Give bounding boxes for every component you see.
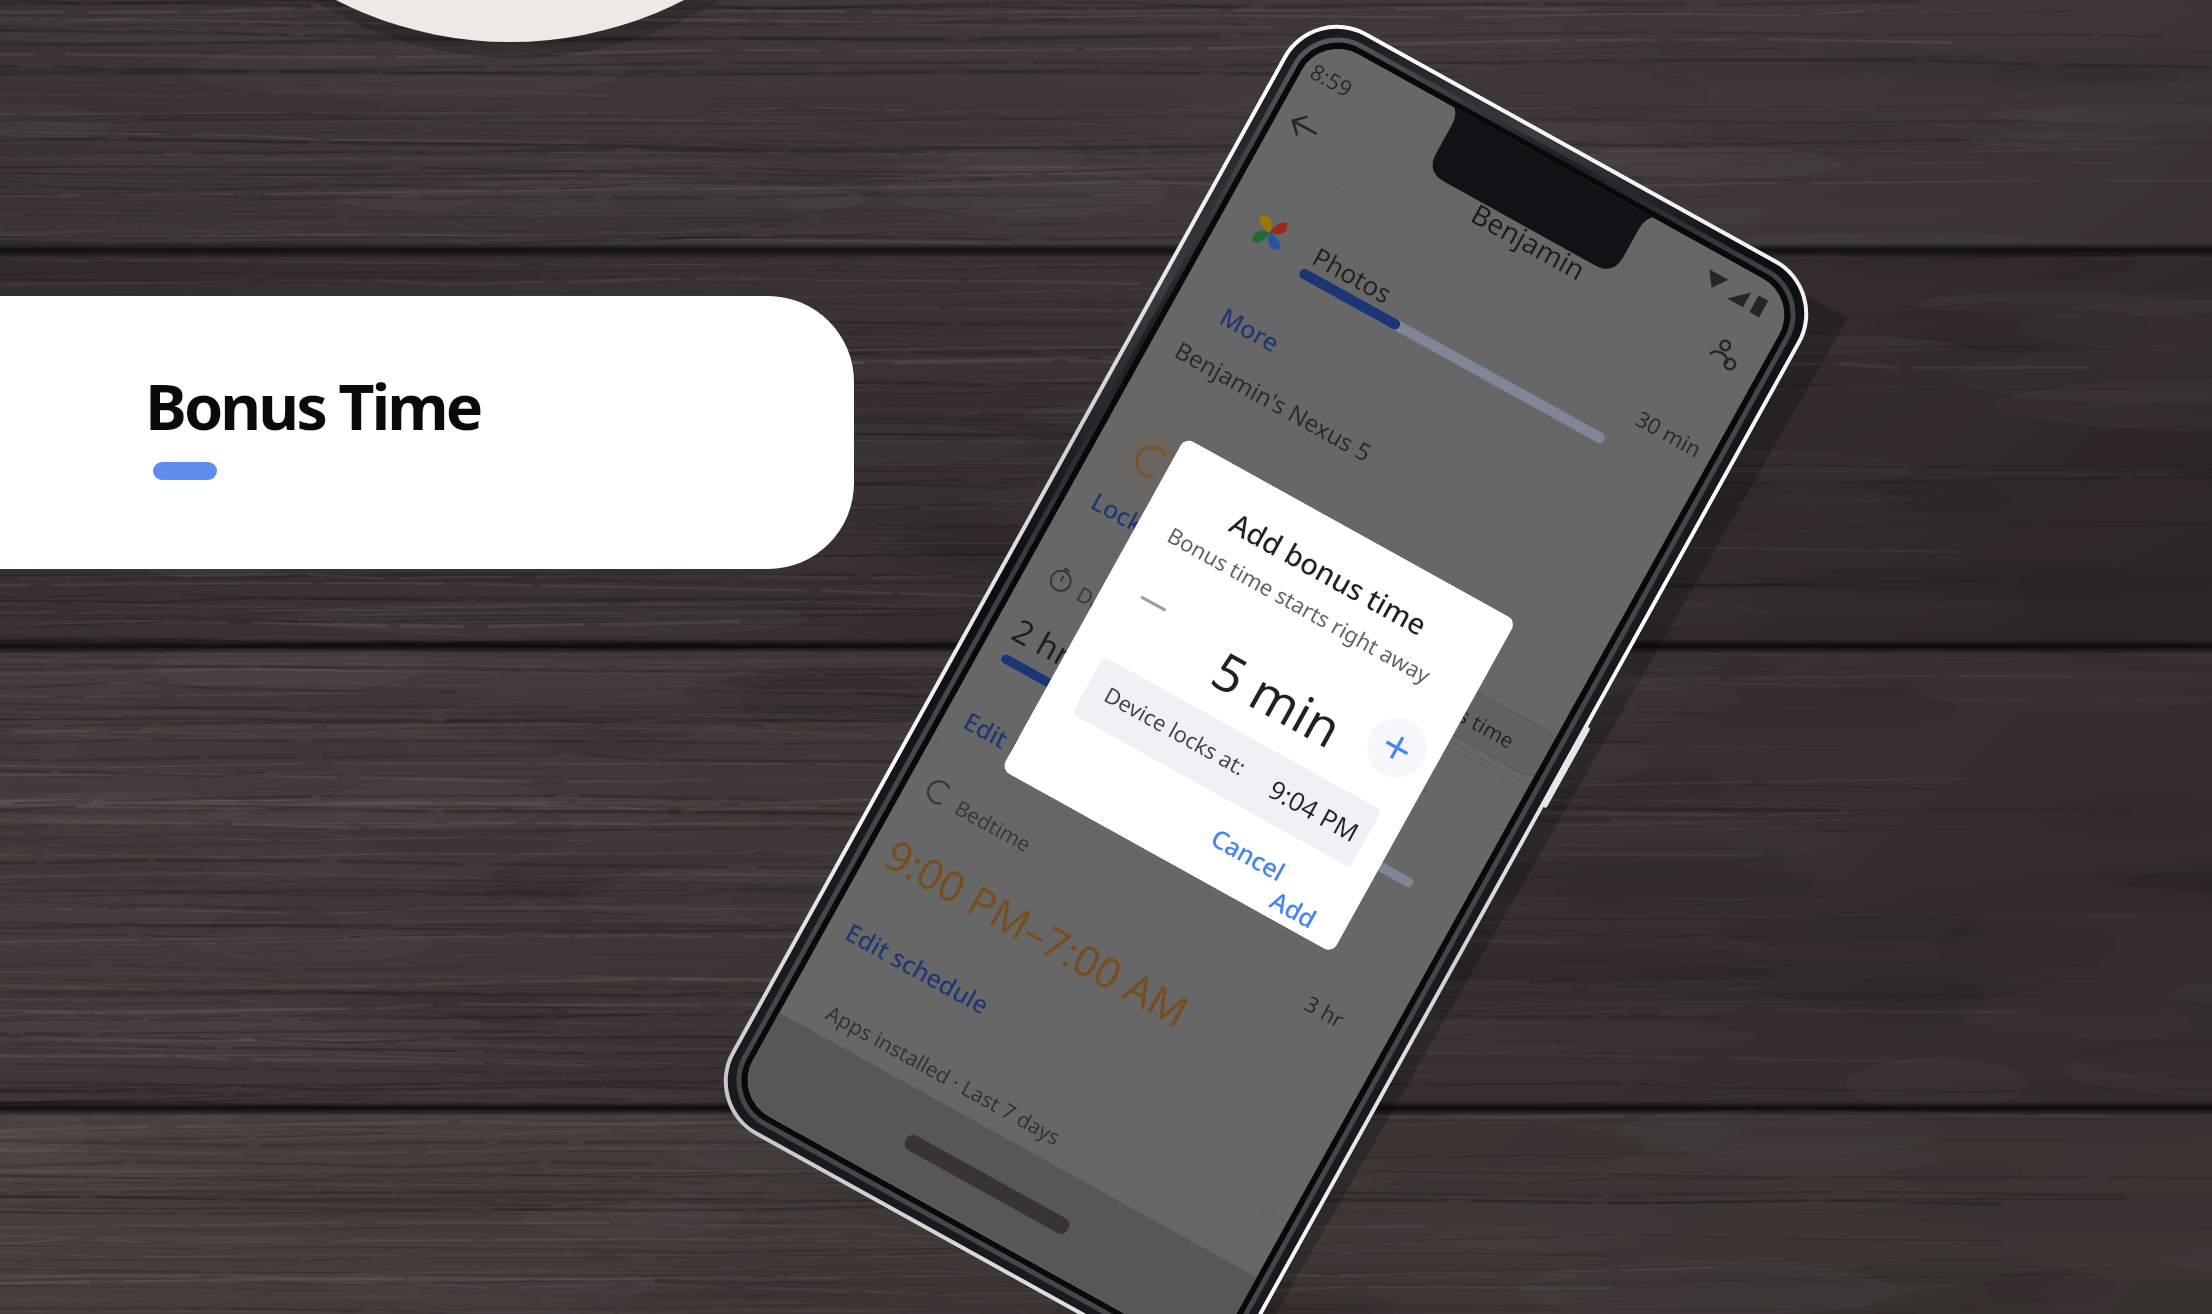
button[interactable]: Bonus time [1384, 653, 1557, 779]
button[interactable]: Add [1254, 873, 1334, 943]
staticText: 5 min [1200, 634, 1356, 763]
staticText: Benjamin [1465, 194, 1593, 288]
staticText: Cancel [1206, 820, 1292, 889]
button[interactable]: Manage account [1693, 324, 1759, 389]
button[interactable]: Cancel [1194, 811, 1303, 898]
staticText: 3 hr [1300, 988, 1350, 1034]
staticText: Daily limit [1071, 580, 1171, 653]
staticText: 2 hr 10 min [1005, 608, 1181, 733]
staticText: Photos [1307, 238, 1399, 311]
staticText: Bonus Time [145, 363, 481, 449]
button[interactable]: Benjamin's Nexus 5 device [1128, 315, 1643, 648]
button[interactable]: Bedtime schedule [811, 742, 1407, 1220]
button[interactable]: Lock device [1086, 484, 1223, 580]
button[interactable]: Add five minutes [1356, 707, 1438, 789]
staticText: Benjamin's Nexus 5 [1169, 333, 1378, 469]
button[interactable]: Edit schedule [840, 915, 995, 1021]
staticText: 9:00 PM–7:00 AM [876, 825, 1199, 1039]
button[interactable]: Subtract five minutes [1111, 561, 1195, 646]
staticText: Apps installed · Last 7 days [821, 999, 1066, 1152]
staticText: Device locks at: [1099, 679, 1252, 782]
staticText: Bonus time [1407, 675, 1520, 755]
button[interactable]: Back [1272, 94, 1337, 160]
staticText: Bonus time starts right away [1163, 520, 1437, 690]
button[interactable]: More [1214, 299, 1286, 359]
staticText: Bedtime [949, 793, 1036, 859]
staticText: Add bonus time [1223, 503, 1435, 644]
staticText: 30 min [1631, 403, 1707, 464]
button[interactable]: Edit limit [958, 703, 1067, 785]
staticText: 9:04 PM [1263, 771, 1366, 849]
staticText: Add [1265, 883, 1323, 936]
button[interactable]: Photos app usage [1167, 174, 1722, 578]
staticText: 8:59 [1305, 56, 1358, 103]
